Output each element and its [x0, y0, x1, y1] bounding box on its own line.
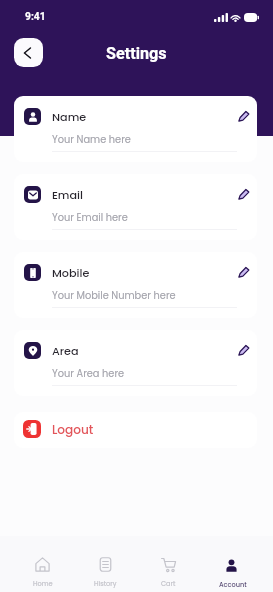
staticText: Name	[52, 109, 87, 125]
button[interactable]: Home	[11, 550, 74, 592]
staticText: Email	[52, 187, 83, 203]
staticText: Your Area here	[52, 367, 125, 381]
staticText: Settings	[106, 44, 167, 63]
button[interactable]: Account	[201, 550, 264, 592]
staticText: History	[94, 579, 117, 588]
staticText: Mobile	[52, 265, 90, 281]
button[interactable]: Back	[14, 38, 43, 67]
button[interactable]: Area	[14, 330, 257, 396]
staticText: Home	[33, 579, 53, 588]
staticText: Your Name here	[52, 133, 131, 147]
staticText: Your Email here	[52, 211, 128, 225]
staticText: Cart	[161, 579, 176, 588]
button[interactable]: Logout	[14, 412, 257, 448]
button[interactable]: History	[74, 550, 137, 592]
button[interactable]: Edit Area	[238, 344, 250, 356]
button[interactable]: Name	[14, 96, 257, 162]
button[interactable]: Email	[14, 174, 257, 240]
button[interactable]: Edit Name	[238, 110, 250, 122]
staticText: Your Mobile Number here	[52, 289, 176, 303]
staticText: Logout	[52, 421, 94, 438]
button[interactable]: Mobile	[14, 252, 257, 318]
staticText: Account	[219, 580, 247, 589]
button[interactable]: Edit Mobile	[238, 266, 250, 278]
button[interactable]: Cart	[137, 550, 200, 592]
staticText: Area	[52, 343, 79, 359]
button[interactable]: Edit Email	[238, 188, 250, 200]
staticText: 9:41	[25, 10, 46, 22]
